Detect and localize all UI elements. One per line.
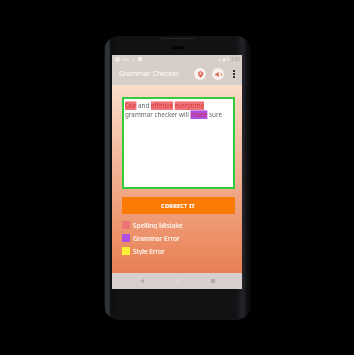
button[interactable]: Speak text (212, 68, 224, 80)
staticText: Spelling Mistake (133, 221, 183, 229)
staticText: CORRECT IT (161, 202, 196, 209)
button[interactable]: Our and effetive everytime grammar check… (125, 101, 227, 187)
button[interactable]: Style Error (122, 247, 235, 255)
staticText: Grammar Error (133, 234, 180, 242)
button[interactable]: Recent apps (207, 275, 219, 287)
button[interactable]: More options (230, 68, 238, 80)
button[interactable]: CORRECT IT (122, 197, 235, 214)
button[interactable]: Voice input (194, 68, 206, 80)
button[interactable]: Back (136, 275, 148, 287)
button[interactable]: Spelling Mistake (122, 221, 235, 229)
staticText: Grammar Checker (119, 69, 180, 79)
staticText: Our and effetive everytime grammar check… (125, 101, 227, 119)
button[interactable]: Grammar Error (122, 234, 235, 242)
staticText: Style Error (133, 247, 165, 255)
staticText: 3:33 (231, 56, 240, 62)
